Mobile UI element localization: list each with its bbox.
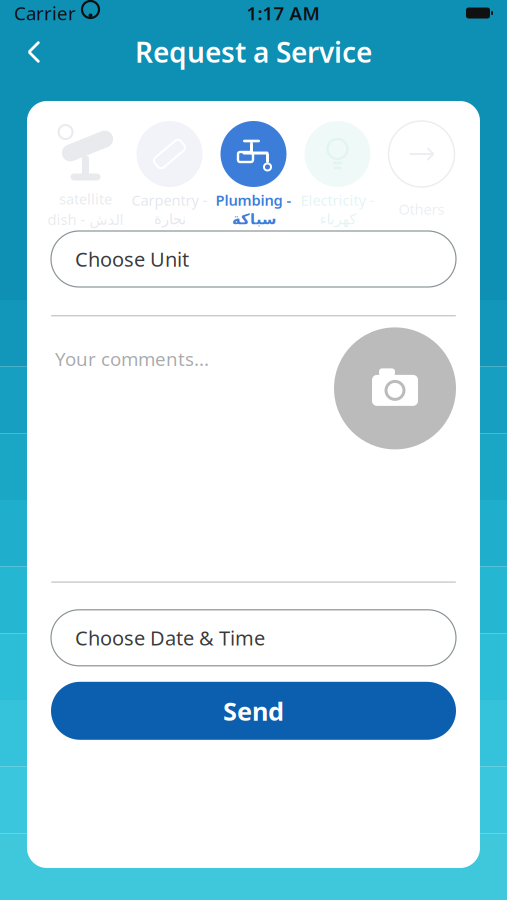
button[interactable]: Others [379,121,463,225]
staticText: Request a Service [135,33,372,71]
button[interactable]: Carpentry - [127,121,211,225]
button[interactable]: Back [12,30,56,74]
staticText: Send [223,694,284,728]
button[interactable]: Choose Unit [51,231,456,287]
staticText: Carrier [14,1,76,25]
button[interactable]: Add photo [334,327,456,449]
staticText: dish - الدش [47,209,123,229]
staticText: Carpentry - [131,190,207,210]
button[interactable]: Choose Date & Time [51,610,456,666]
staticText: satellite [59,189,112,208]
staticText: Choose Unit [75,246,189,272]
button[interactable]: satellite [43,121,127,225]
staticText: Your comments... [55,346,209,371]
staticText: سباكة [231,211,275,227]
staticText: نجارة [153,211,185,227]
button[interactable]: Plumbing - [211,121,295,225]
staticText: Choose Date & Time [75,624,265,651]
button[interactable]: Electricity - [295,121,379,225]
staticText: Electricity - [300,190,374,210]
button[interactable]: Send [51,682,456,740]
staticText: Others [398,199,444,219]
staticText: 1:17 AM [246,1,319,25]
staticText: كهرباء [319,211,356,227]
staticText: Plumbing - [215,190,291,210]
